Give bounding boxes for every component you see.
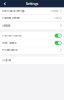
staticText: Settings <box>25 2 38 6</box>
staticText: Push notifications <box>2 34 21 37</box>
button[interactable]: Back <box>2 1 7 6</box>
button[interactable]: Notification settings <box>0 8 64 15</box>
button[interactable]: Push notifications <box>0 32 64 39</box>
button[interactable]: Payment method <box>0 15 64 22</box>
staticText: Notification settings <box>2 10 24 12</box>
staticText: Card <box>54 17 59 20</box>
button[interactable]: Language <box>0 22 64 29</box>
staticText: Payment method <box>2 17 19 20</box>
staticText: Language <box>2 24 10 27</box>
staticText: Sign out <box>2 59 11 62</box>
staticText: Email updates <box>2 41 16 44</box>
staticText: Privacy policy <box>2 49 17 52</box>
button[interactable]: Sign out <box>0 57 64 64</box>
button[interactable]: Email updates <box>0 39 64 47</box>
staticText: Default <box>51 10 59 12</box>
button[interactable]: Privacy policy <box>0 47 64 54</box>
